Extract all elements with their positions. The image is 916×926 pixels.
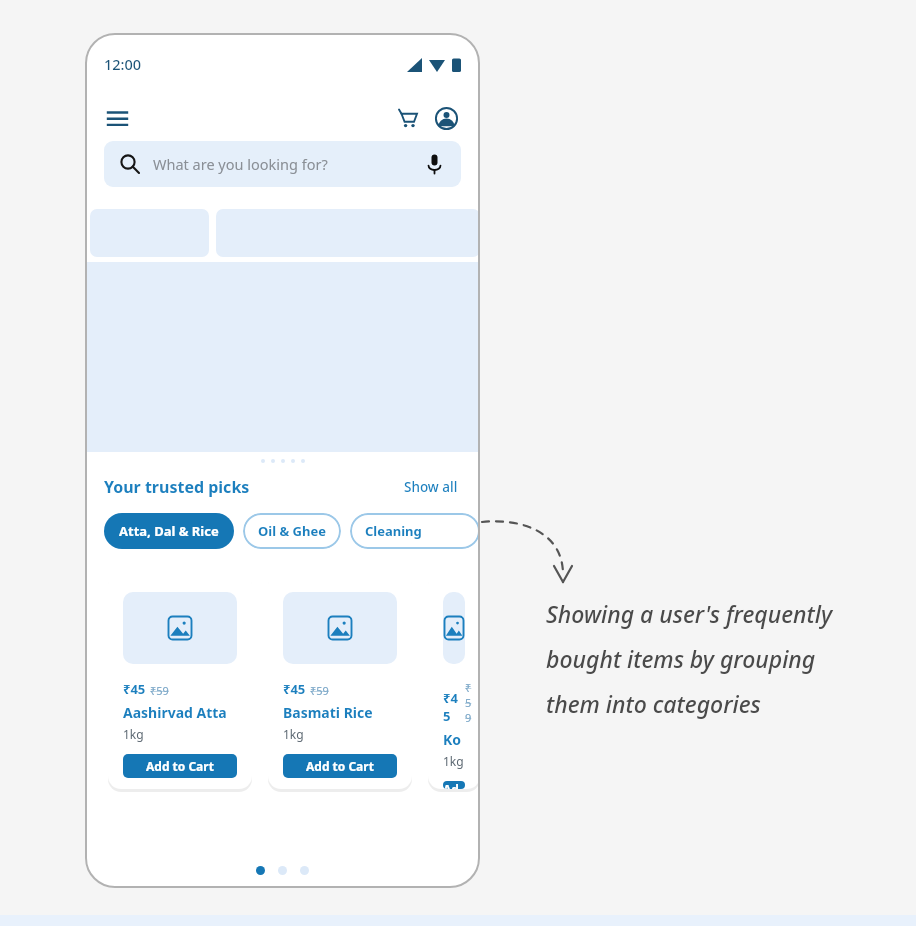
staticText: Show all xyxy=(404,478,458,496)
button[interactable]: Add to Cart xyxy=(283,754,397,778)
staticText: Aashirvad Atta xyxy=(123,703,227,722)
staticText: Basmati Rice xyxy=(283,703,373,722)
button[interactable]: Add to Cart xyxy=(443,781,465,789)
staticText: ₹45 xyxy=(123,680,146,698)
button[interactable]: Account xyxy=(431,103,461,133)
button[interactable]: ₹45 xyxy=(428,571,480,789)
button[interactable]: Menu xyxy=(104,105,130,131)
staticText: 1kg xyxy=(283,726,304,742)
staticText: bought items by grouping xyxy=(546,643,816,674)
staticText: Atta, Dal & Rice xyxy=(119,522,219,540)
staticText: Oil & Ghee xyxy=(258,522,326,540)
staticText: ₹59 xyxy=(310,683,329,698)
staticText: Add to Cart xyxy=(443,781,465,789)
staticText: 12:00 xyxy=(104,54,142,74)
staticText: ₹45 xyxy=(443,689,465,725)
staticText: 1kg xyxy=(123,726,144,742)
button[interactable]: Show all xyxy=(401,475,461,499)
staticText: Kolam Rice xyxy=(443,730,465,749)
staticText: Add to Cart xyxy=(306,758,374,774)
other: Voice search xyxy=(423,153,445,175)
button[interactable] xyxy=(216,209,480,257)
button[interactable]: Cart xyxy=(393,103,423,133)
staticText: Cleaning Essentials xyxy=(365,522,465,540)
staticText: Add to Cart xyxy=(146,758,214,774)
button[interactable]: What are you looking for? xyxy=(104,141,461,187)
button[interactable]: ₹45 xyxy=(108,571,252,789)
button[interactable] xyxy=(85,262,480,452)
staticText: them into categories xyxy=(546,688,761,719)
button[interactable]: Cleaning Essentials xyxy=(350,513,480,549)
staticText: ₹59 xyxy=(150,683,169,698)
button[interactable]: ₹45 xyxy=(268,571,412,789)
button[interactable]: Atta, Dal & Rice xyxy=(104,513,234,549)
staticText: Showing a user's frequently xyxy=(546,598,833,629)
staticText: 1kg xyxy=(443,753,464,769)
staticText: ₹45 xyxy=(283,680,306,698)
staticText: Your trusted picks xyxy=(104,476,250,498)
button[interactable]: Oil & Ghee xyxy=(243,513,341,549)
button[interactable]: Add to Cart xyxy=(123,754,237,778)
staticText: What are you looking for? xyxy=(153,154,328,174)
